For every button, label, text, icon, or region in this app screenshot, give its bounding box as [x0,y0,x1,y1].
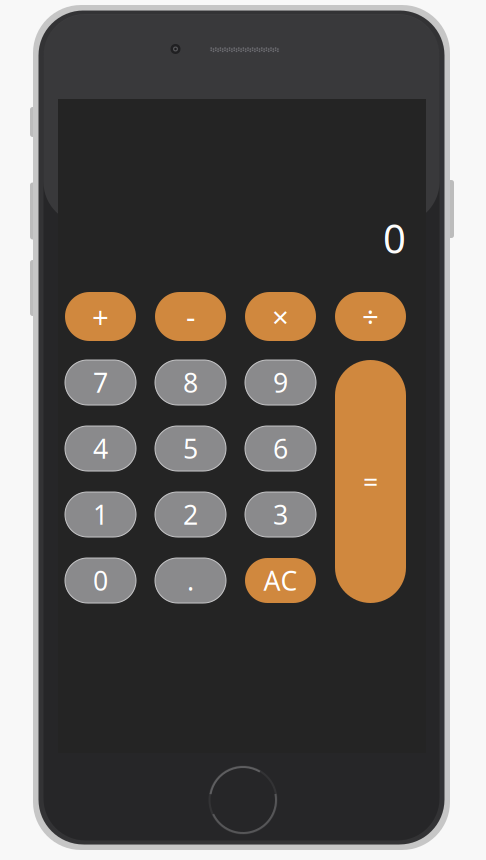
staticText: 9 [273,365,288,400]
button[interactable]: 2 [155,492,226,537]
button[interactable]: 5 [155,426,226,471]
staticText: 0 [93,563,108,598]
button[interactable]: 9 [245,360,316,405]
staticText: + [92,297,109,336]
button[interactable]: Home [203,760,283,840]
staticText: 1 [93,497,108,532]
button[interactable]: Decimal point [155,558,226,603]
button[interactable]: 0 [65,558,136,603]
staticText: . [187,563,194,598]
staticText: = [363,464,378,499]
staticText: 7 [93,365,108,400]
staticText: 4 [93,431,108,466]
button[interactable]: 4 [65,426,136,471]
staticText: AC [263,563,297,598]
button[interactable]: Multiply [245,292,316,341]
button[interactable]: 3 [245,492,316,537]
button[interactable]: Divide [335,292,406,341]
staticText: - [186,297,195,336]
button[interactable]: Subtract [155,292,226,341]
button[interactable]: 7 [65,360,136,405]
staticText: 2 [183,497,198,532]
staticText: ÷ [362,297,379,336]
staticText: 6 [273,431,288,466]
staticText: 0 [383,211,406,264]
button[interactable]: Equals [335,360,406,603]
staticText: 5 [183,431,198,466]
button[interactable]: 1 [65,492,136,537]
staticText: 8 [183,365,198,400]
button[interactable]: All clear [245,558,316,603]
button[interactable]: Add [65,292,136,341]
button[interactable]: 6 [245,426,316,471]
staticText: × [272,297,289,336]
staticText: 3 [273,497,288,532]
button[interactable]: 8 [155,360,226,405]
